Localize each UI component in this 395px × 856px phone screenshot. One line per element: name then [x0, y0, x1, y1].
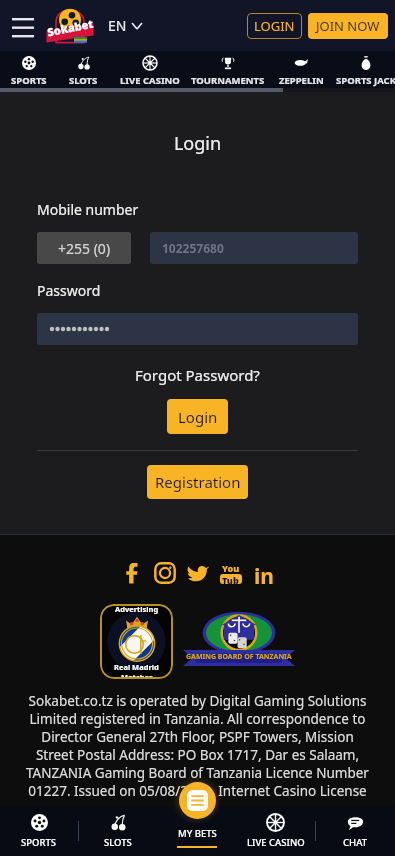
button[interactable]: EN: [108, 16, 142, 35]
button[interactable]: Forgot Password?: [131, 361, 264, 389]
staticText: LIVE CASINO: [247, 836, 305, 849]
button[interactable]: ZEPPELIN: [266, 51, 336, 88]
staticText: +255 (0): [58, 239, 111, 258]
button[interactable]: Menu: [6, 9, 40, 43]
button[interactable]: Sokabet home: [45, 3, 95, 48]
button[interactable]: SLOTS: [79, 806, 157, 856]
staticText: TANZANIA Gaming Board of Tanzania Licenc…: [0, 764, 395, 782]
button[interactable]: CHAT: [316, 806, 395, 856]
staticText: Login: [178, 407, 218, 427]
button[interactable]: TOURNAMENTS: [190, 51, 266, 88]
button[interactable]: Registration: [147, 465, 248, 499]
staticText: LOGIN: [254, 17, 295, 35]
button[interactable]: Facebook: [119, 560, 145, 586]
button[interactable]: JOIN NOW: [308, 13, 388, 39]
button[interactable]: [37, 313, 358, 345]
staticText: SPORTS JACKPOT: [336, 74, 395, 87]
staticText: JOIN NOW: [316, 17, 380, 35]
staticText: Limited registered in Tanzania. All corr…: [0, 710, 395, 728]
button[interactable]: Twitter: [185, 560, 211, 586]
button[interactable]: LOGIN: [247, 13, 302, 39]
staticText: Matches: [121, 672, 153, 679]
staticText: Real Madrid: [114, 662, 159, 672]
staticText: Sokabet: [46, 16, 95, 39]
staticText: GAMING BOARD OF TANZANIA: [186, 652, 292, 662]
button[interactable]: 102257680: [150, 232, 358, 264]
staticText: Tube: [222, 574, 240, 584]
button[interactable]: Real Madrid Matches advertising: [100, 604, 173, 679]
staticText: Password: [37, 281, 101, 300]
staticText: You: [222, 562, 240, 574]
button[interactable]: +255 (0): [37, 232, 131, 264]
staticText: CHAT: [343, 836, 368, 849]
staticText: SPORTS: [11, 74, 47, 87]
staticText: Sokabet.co.tz is operated by Digital Gam…: [0, 692, 395, 710]
button[interactable]: Gaming Board of Tanzania: [183, 604, 295, 668]
staticText: SPORTS: [21, 836, 57, 849]
staticText: SLOTS: [69, 74, 98, 87]
button[interactable]: SPORTS: [0, 51, 57, 88]
button[interactable]: SPORTS JACKPOT: [336, 51, 395, 88]
staticText: 01227. Issued on 05/08/2019. Internet Ca…: [0, 782, 395, 800]
button[interactable]: MY BETS: [157, 806, 236, 856]
staticText: 102257680: [162, 240, 224, 256]
staticText: in: [254, 562, 274, 584]
staticText: Street Postal Address: PO Box 1717, Dar …: [0, 746, 395, 764]
button[interactable]: LIVE CASINO: [110, 51, 190, 88]
button[interactable]: LinkedIn: [251, 560, 277, 586]
staticText: MY BETS: [178, 827, 217, 840]
staticText: LIVE CASINO: [120, 74, 180, 87]
staticText: Director General 27th Floor, PSPF Towers…: [0, 728, 395, 746]
button[interactable]: SPORTS: [0, 806, 78, 856]
staticText: EN: [108, 16, 127, 35]
staticText: Registration: [155, 472, 241, 492]
staticText: TOURNAMENTS: [191, 74, 265, 87]
staticText: ZEPPELIN: [279, 74, 324, 87]
staticText: Mobile number: [37, 200, 139, 219]
button[interactable]: Instagram: [152, 560, 178, 586]
button[interactable]: LIVE CASINO: [236, 806, 315, 856]
button[interactable]: YouTube: [218, 560, 244, 586]
staticText: Login: [0, 131, 395, 156]
staticText: SLOTS: [104, 836, 132, 849]
button[interactable]: Login: [167, 399, 228, 434]
staticText: Advertising: [115, 604, 159, 614]
button[interactable]: SLOTS: [57, 51, 110, 88]
staticText: Forgot Password?: [135, 365, 260, 385]
